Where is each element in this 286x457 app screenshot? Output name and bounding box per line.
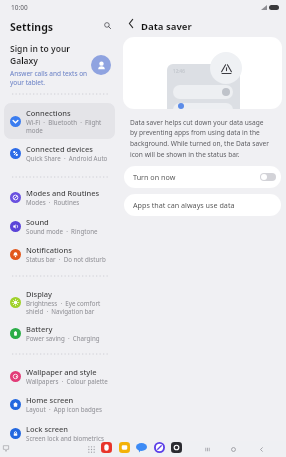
button[interactable]: App 2 — [119, 442, 130, 453]
button[interactable]: Display — [4, 284, 115, 320]
staticText: Data saver helps cut down your data usag… — [130, 118, 269, 159]
staticText: Notifications — [26, 245, 72, 255]
staticText: Wallpaper and style — [26, 367, 97, 377]
staticText: Turn on now — [133, 172, 176, 182]
staticText: 10:00 — [11, 3, 28, 12]
button[interactable]: App 3 — [136, 442, 147, 453]
staticText: Home screen — [26, 395, 74, 405]
button[interactable]: App 4 — [154, 442, 165, 453]
staticText: Sound mode · Ringtone — [26, 227, 98, 235]
button[interactable]: Apps that can always use data — [124, 194, 281, 216]
button[interactable]: Back — [127, 18, 135, 29]
staticText: Layout · App icon badges — [26, 405, 103, 413]
button[interactable]: Back — [255, 443, 267, 455]
staticText: Answer calls and texts on — [10, 69, 88, 78]
staticText: Display — [26, 289, 53, 299]
staticText: Modes · Routines — [26, 198, 80, 206]
staticText: Settings — [10, 20, 54, 34]
staticText: 12:46 — [173, 68, 185, 74]
staticText: Battery — [26, 324, 53, 334]
button[interactable]: Modes and Routines — [4, 183, 115, 211]
button[interactable]: Home — [227, 443, 239, 455]
staticText: Connected devices — [26, 144, 93, 154]
staticText: Sound — [26, 217, 49, 227]
button[interactable]: Recents — [201, 443, 213, 455]
staticText: Connections — [26, 108, 71, 118]
staticText: Power saving · Charging — [26, 334, 100, 342]
staticText: your tablet. — [10, 78, 46, 87]
staticText: Apps that can always use data — [133, 200, 235, 210]
button[interactable]: App 1 — [101, 442, 112, 453]
button[interactable]: Wallpaper and style — [4, 362, 115, 390]
staticText: Brightness · Eye comfort shield · Naviga… — [26, 299, 101, 315]
staticText: Sign in to your — [10, 43, 70, 55]
button[interactable]: Apps — [88, 446, 95, 453]
staticText: Lock screen — [26, 424, 69, 434]
button[interactable]: Accessibility — [3, 445, 9, 452]
button[interactable]: Connected devices — [4, 139, 115, 167]
button[interactable]: Notifications — [4, 240, 115, 268]
button[interactable]: Home screen — [4, 390, 115, 418]
staticText: Galaxy — [10, 55, 38, 67]
button[interactable]: Search — [101, 19, 113, 31]
button[interactable]: Battery — [4, 319, 115, 347]
staticText: Quick Share · Android Auto — [26, 154, 108, 162]
staticText: Modes and Routines — [26, 188, 100, 198]
staticText: Wi-Fi · Bluetooth · Flight mode — [26, 118, 102, 134]
staticText: Wallpapers · Colour palette — [26, 377, 108, 385]
staticText: Status bar · Do not disturb — [26, 255, 106, 263]
button[interactable]: Sound — [4, 212, 115, 240]
button[interactable]: Turn on now — [124, 166, 281, 188]
button[interactable]: Connections — [4, 103, 115, 139]
staticText: Data saver — [141, 20, 192, 33]
staticText: Screen lock and biometrics — [26, 434, 104, 442]
button[interactable]: Lock screen — [4, 419, 115, 447]
button[interactable]: App 5 — [171, 442, 182, 453]
